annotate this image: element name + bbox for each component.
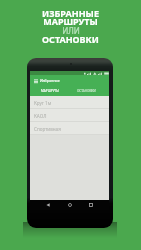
button[interactable]: Recents [87, 201, 95, 209]
staticText: МАРШРУТЫ [41, 89, 59, 93]
staticText: Круг 1м [34, 100, 52, 106]
button[interactable]: МАРШРУТЫ [33, 86, 66, 96]
button[interactable]: ОСТАНОВКИ [70, 86, 103, 96]
staticText: ИЗБРАННЫЕ [42, 7, 99, 19]
staticText: ОСТАНОВКИ [77, 89, 96, 93]
staticText: КАОЛ [34, 113, 47, 119]
staticText: ИЛИ [62, 25, 80, 36]
button[interactable]: Home [66, 201, 74, 209]
staticText: Избранное [40, 78, 60, 83]
button[interactable]: Menu [33, 78, 38, 83]
button[interactable]: Back [44, 201, 52, 209]
staticText: Спортивная [34, 126, 61, 132]
button[interactable]: Круг 1м [30, 96, 109, 109]
staticText: МАРШРУТЫ [43, 15, 98, 27]
staticText: ОСТАНОВКИ [42, 33, 99, 45]
button[interactable]: КАОЛ [30, 109, 109, 122]
button[interactable]: Спортивная [30, 122, 109, 135]
